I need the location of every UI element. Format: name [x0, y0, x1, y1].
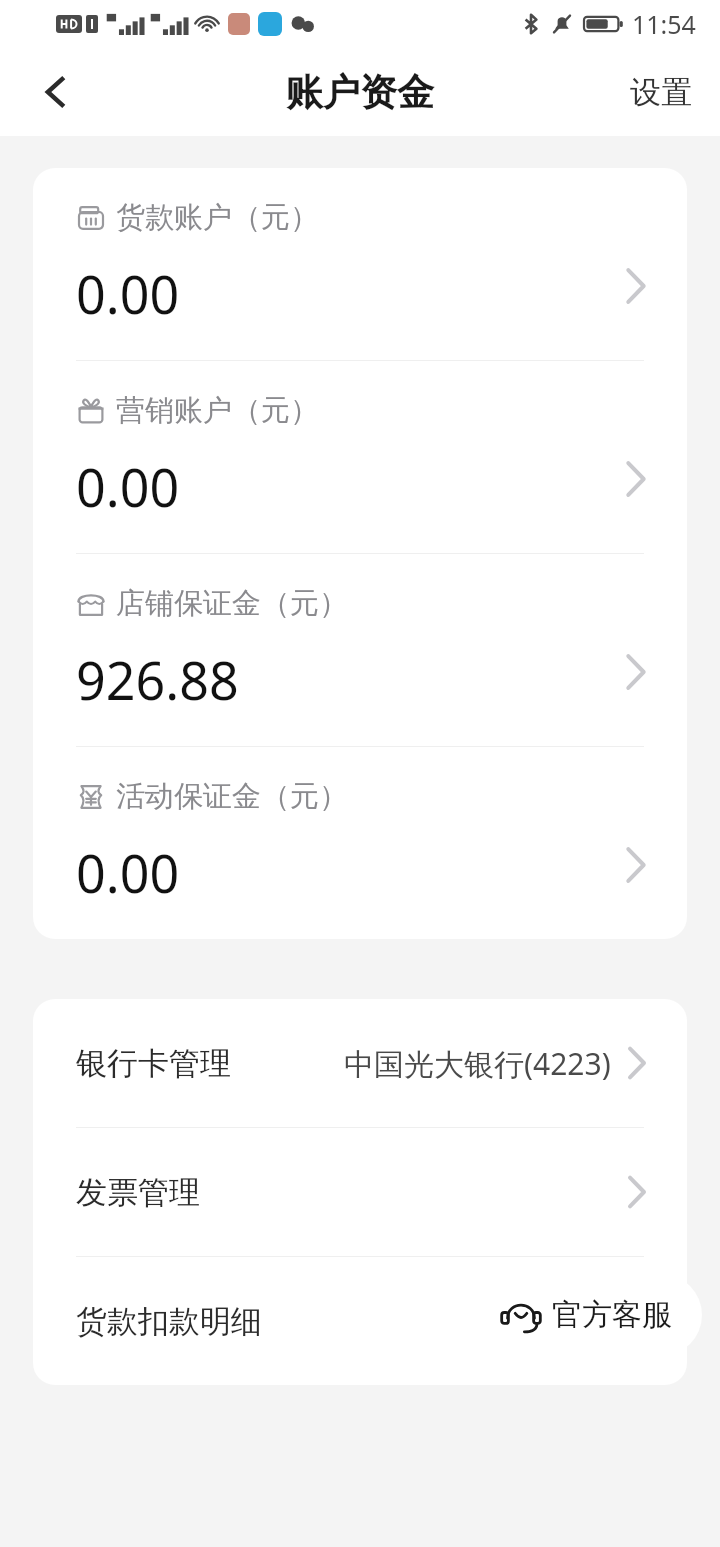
button[interactable]: 货款账户（元） [33, 168, 687, 360]
staticText: 货款账户（元） [116, 199, 319, 236]
button[interactable]: 营销账户（元） [33, 361, 687, 553]
staticText: 官方客服 [552, 1296, 672, 1334]
staticText: 0.00 [76, 258, 180, 329]
staticText: 中国光大银行(4223) [344, 1043, 611, 1084]
button[interactable]: 活动保证金（元） [33, 747, 687, 939]
staticText: 账户资金 [286, 69, 434, 116]
staticText: 设置 [630, 73, 692, 112]
staticText: 货款扣款明细 [76, 1302, 262, 1341]
staticText: 926.88 [76, 644, 239, 715]
staticText: 0.00 [76, 451, 180, 522]
staticText: 营销账户（元） [116, 392, 319, 429]
button[interactable]: Back [20, 56, 92, 128]
button[interactable]: 货款扣款明细 [33, 1257, 687, 1385]
button[interactable]: 官方客服 [474, 1274, 702, 1356]
button[interactable]: 银行卡管理 [33, 999, 687, 1127]
button[interactable]: 设置 [624, 63, 698, 122]
button[interactable]: 发票管理 [33, 1128, 687, 1256]
button[interactable]: 店铺保证金（元） [33, 554, 687, 746]
staticText: 银行卡管理 [76, 1044, 231, 1083]
staticText: 店铺保证金（元） [116, 585, 348, 622]
staticText: 发票管理 [76, 1173, 200, 1212]
staticText: 活动保证金（元） [116, 778, 348, 815]
staticText: 0.00 [76, 837, 180, 908]
staticText: 11:54 [632, 7, 696, 41]
